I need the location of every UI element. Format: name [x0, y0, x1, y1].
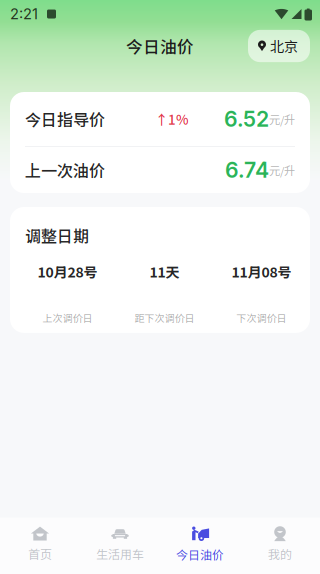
staticText: 元/升	[269, 162, 295, 178]
button[interactable]: 我的	[240, 518, 320, 573]
staticText: 首页	[28, 545, 52, 562]
button[interactable]: 今日油价	[160, 518, 240, 574]
staticText: 11月08号	[231, 261, 291, 281]
staticText: 6.74	[225, 157, 269, 183]
staticText: 今日油价	[176, 546, 224, 563]
staticText: 11天	[149, 261, 179, 281]
staticText: 距下次调价日	[134, 310, 194, 325]
staticText: ↑1%	[155, 109, 189, 129]
staticText: 今日指导价	[25, 107, 105, 131]
staticText: 生活用车	[96, 545, 144, 562]
button[interactable]: 首页	[0, 518, 80, 573]
staticText: 我的	[268, 545, 292, 562]
button[interactable]: 北京	[248, 30, 310, 62]
staticText: 今日油价	[126, 34, 194, 58]
staticText: 6.52	[224, 106, 269, 132]
staticText: 元/升	[269, 111, 295, 127]
staticText: 调整日期	[25, 224, 89, 247]
staticText: 10月28号	[37, 261, 97, 281]
staticText: 2:21	[10, 5, 38, 23]
staticText: 上次调价日	[42, 310, 92, 325]
staticText: 北京	[270, 36, 298, 56]
staticText: 上一次油价	[25, 158, 105, 182]
staticText: 下次调价日	[236, 310, 286, 325]
button[interactable]: 生活用车	[80, 518, 160, 573]
